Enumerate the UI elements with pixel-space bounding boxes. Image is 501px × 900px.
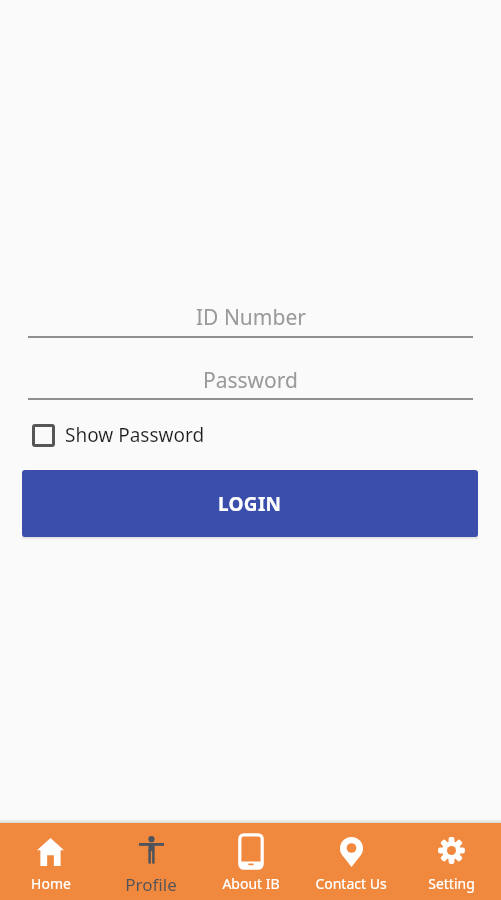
button[interactable]: About IB bbox=[201, 823, 301, 900]
staticText: ID Number bbox=[196, 303, 306, 332]
staticText: Contact Us bbox=[315, 874, 387, 893]
staticText: LOGIN bbox=[218, 491, 282, 517]
staticText: Setting bbox=[428, 874, 475, 893]
button[interactable]: Setting bbox=[401, 823, 501, 900]
button[interactable]: Home bbox=[0, 823, 101, 900]
staticText: Home bbox=[31, 874, 71, 893]
staticText: Password bbox=[203, 366, 298, 395]
staticText: About IB bbox=[222, 874, 280, 893]
button[interactable]: Profile bbox=[101, 823, 201, 900]
button[interactable]: Contact Us bbox=[301, 823, 401, 900]
staticText: Show Password bbox=[65, 422, 205, 448]
button[interactable]: LOGIN bbox=[22, 470, 478, 537]
staticText: Profile bbox=[125, 873, 177, 896]
button[interactable]: Show Password bbox=[32, 422, 205, 448]
